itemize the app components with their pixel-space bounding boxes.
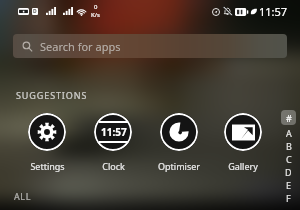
button[interactable]: E <box>281 179 296 190</box>
staticText: C <box>286 153 292 164</box>
button[interactable]: Jump to # <box>281 110 296 125</box>
button[interactable]: Gallery <box>216 113 270 172</box>
staticText: F <box>286 192 291 203</box>
button[interactable]: 11:57 <box>86 113 140 172</box>
button[interactable]: Search for apps <box>13 34 287 58</box>
button[interactable]: C <box>281 153 296 164</box>
staticText: E <box>286 179 292 190</box>
staticText: Settings <box>30 160 65 172</box>
button[interactable]: Optimiser <box>152 113 206 172</box>
staticText: D <box>285 166 292 177</box>
button[interactable]: A <box>281 127 296 138</box>
staticText: 11:57 <box>259 4 288 19</box>
staticText: 11:57 <box>101 125 127 139</box>
button[interactable]: D <box>281 166 296 177</box>
staticText: Gallery <box>228 160 258 172</box>
staticText: A <box>286 127 292 138</box>
staticText: K/s <box>91 11 100 19</box>
staticText: D <box>33 8 37 15</box>
staticText: Search for apps <box>40 39 121 54</box>
staticText: B <box>286 140 292 151</box>
staticText: Clock <box>102 160 125 172</box>
button[interactable]: Settings <box>20 113 74 172</box>
staticText: ALL <box>14 190 31 202</box>
button[interactable]: F <box>281 192 296 203</box>
staticText: 0 <box>94 3 98 11</box>
staticText: Optimiser <box>158 160 200 172</box>
staticText: SUGGESTIONS <box>16 89 88 101</box>
staticText: # <box>286 112 292 124</box>
button[interactable]: B <box>281 140 296 151</box>
